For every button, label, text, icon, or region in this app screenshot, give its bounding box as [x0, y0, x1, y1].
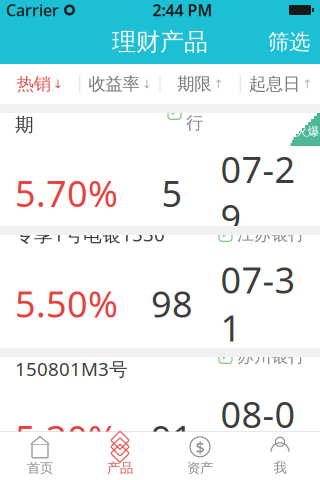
staticText: 起息日 [249, 73, 300, 95]
staticText: 火爆 [295, 124, 319, 139]
button[interactable]: 金石稳享2号150801M3号 [0, 357, 320, 470]
button[interactable]: 我 [240, 432, 320, 480]
staticText: 5.50% [15, 280, 118, 327]
staticText: ↑ [302, 77, 312, 91]
staticText: 产品 [107, 460, 133, 476]
button[interactable]: 热销 [0, 64, 79, 104]
staticText: 08-03 [220, 390, 295, 480]
button[interactable]: 产品 [80, 432, 160, 480]
staticText: 年化收益率 [15, 358, 80, 374]
staticText: 5.30% [15, 414, 118, 462]
staticText: 5.70% [15, 169, 118, 217]
staticText: 筛选 [268, 29, 310, 55]
staticText: 资产 [187, 460, 213, 476]
staticText: ✓ [221, 228, 230, 240]
button[interactable]: 收益率 [80, 64, 159, 104]
staticText: 我 [273, 460, 286, 476]
staticText: 理财帝专属9号5期 [15, 88, 151, 136]
staticText: 江苏银行 [237, 224, 305, 245]
staticText: 起息日 [238, 358, 277, 374]
staticText: 首页 [27, 460, 53, 476]
staticText: 苏州银行 [237, 346, 305, 367]
staticText: ↑ [213, 77, 223, 91]
button[interactable]: 专享1号电银1530 [0, 235, 320, 348]
staticText: Carrier [6, 0, 59, 21]
staticText: 98 [151, 280, 193, 327]
staticText: 专享1号电银1530 [15, 222, 165, 247]
staticText: 收益率 [88, 73, 139, 95]
staticText: 期限 [177, 73, 211, 95]
button[interactable]: 筛选 [258, 20, 320, 64]
staticText: ✓ [170, 106, 179, 118]
staticText: 91 [151, 414, 193, 462]
staticText: ✓ [221, 350, 230, 362]
button[interactable]: 起息日 [241, 64, 320, 104]
staticText: $ [195, 436, 204, 457]
staticText: 5 [161, 169, 182, 217]
staticText: 理财产品 [112, 27, 208, 57]
button[interactable]: 理财帝专属9号5期 [0, 113, 320, 226]
button[interactable]: 首页 [0, 432, 80, 480]
staticText: 热销 [17, 73, 51, 95]
staticText: 2:44 PM [152, 0, 212, 21]
staticText: 07-31 [220, 256, 295, 351]
staticText: ↓ [53, 77, 63, 91]
staticText: ↓ [141, 77, 151, 91]
staticText: 浙江稠州商业银行 [186, 91, 305, 134]
staticText: 07-29 [220, 145, 295, 241]
button[interactable]: 期限 [160, 64, 240, 104]
staticText: 金石稳享2号150801M3号 [15, 332, 128, 381]
button[interactable]: $ [160, 432, 240, 480]
